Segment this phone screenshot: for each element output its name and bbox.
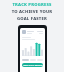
staticText: TO ACHIEVE YOUR [0,9,64,15]
staticText: TRACK PROGRESS [0,2,64,8]
button[interactable]: Weekly progress chart [22,42,43,56]
button[interactable]: VIEW FULL REPORT [22,63,43,67]
staticText: VIEW FULL REPORT [23,64,43,67]
button[interactable] [22,30,43,34]
staticText: GOAL FASTER [0,16,64,22]
button[interactable]: Filter day [22,59,29,61]
